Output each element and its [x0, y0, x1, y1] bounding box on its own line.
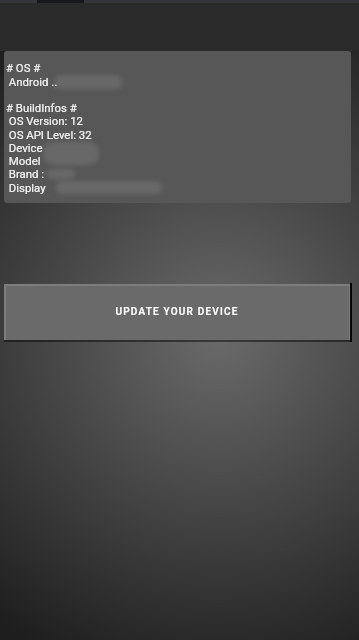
- staticText: Model: [6, 154, 41, 167]
- staticText: Android ..: [6, 75, 58, 88]
- staticText: # BuildInfos #: [6, 101, 77, 114]
- staticText: Brand :: [6, 167, 47, 180]
- staticText: OS Version: 12: [6, 114, 83, 127]
- staticText: Device: [6, 141, 43, 154]
- staticText: OS API Level: 32: [6, 128, 92, 141]
- staticText: UPDATE YOUR DEVICE: [115, 306, 239, 318]
- staticText: Display: [6, 181, 49, 194]
- staticText: # OS #: [6, 61, 41, 74]
- button[interactable]: UPDATE YOUR DEVICE: [4, 284, 350, 340]
